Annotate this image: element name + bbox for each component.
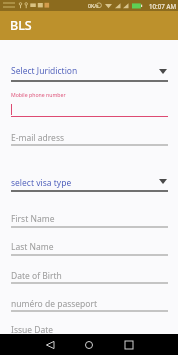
button[interactable]: First Name (11, 213, 55, 225)
button[interactable]: Last Name (11, 241, 54, 253)
button[interactable]: Issue Date (11, 324, 54, 336)
staticText: 10:07 AM (149, 2, 176, 10)
button[interactable]: E-mail adress (11, 132, 65, 144)
button[interactable]: Date of Birth (11, 270, 62, 282)
other: Dropdown (159, 179, 167, 184)
staticText: E-mail adress (11, 132, 65, 144)
other: Dropdown (159, 69, 167, 74)
button[interactable]: Select Juridiction (11, 65, 78, 77)
staticText: select visa type (11, 177, 72, 189)
button[interactable]: Home (74, 334, 104, 355)
staticText: numéro de passeport (11, 298, 98, 310)
staticText: First Name (11, 213, 55, 225)
button[interactable]: select visa type (11, 177, 72, 189)
button[interactable]: Recents (114, 334, 143, 355)
staticText: Select Juridiction (11, 65, 78, 77)
staticText: BLS (10, 17, 32, 34)
staticText: Issue Date (11, 324, 54, 336)
staticText: Date of Birth (11, 270, 62, 282)
staticText: Last Name (11, 241, 54, 253)
button[interactable]: numéro de passeport (11, 298, 98, 310)
button[interactable]: Mobile phone number (11, 91, 66, 98)
staticText: 0K/s (88, 2, 99, 9)
staticText: Mobile phone number (11, 91, 66, 98)
button[interactable]: Back (35, 334, 64, 355)
